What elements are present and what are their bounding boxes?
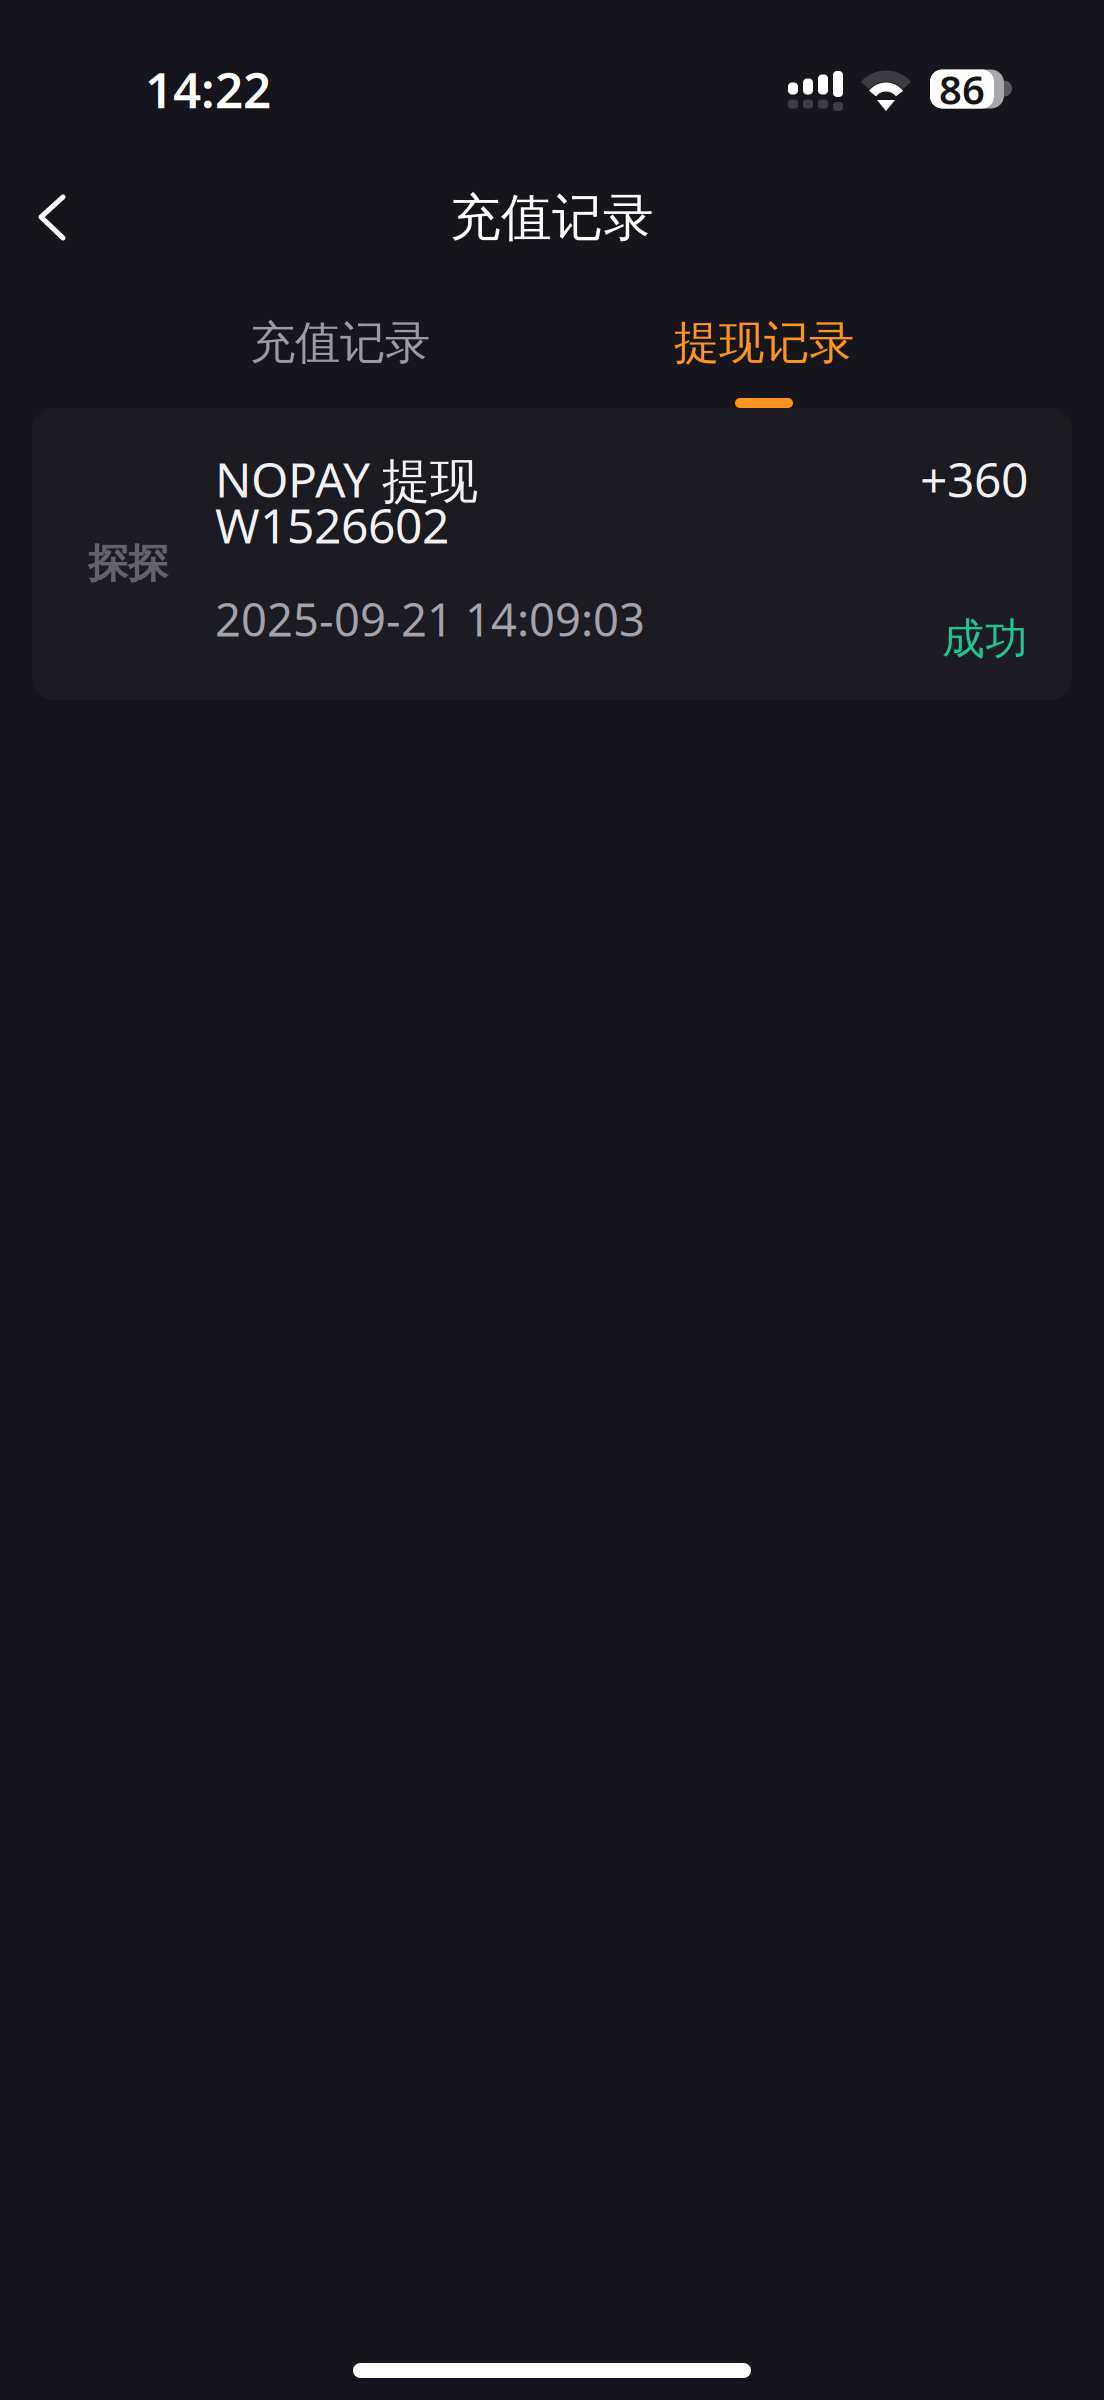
staticText: 探探 — [88, 539, 168, 588]
staticText: 86 — [939, 62, 985, 115]
staticText: 2025-09-21 14:09:03 — [215, 589, 645, 649]
staticText: 提现记录 — [674, 315, 854, 371]
staticText: NOPAY 提现 — [215, 447, 478, 511]
staticText: +360 — [920, 447, 1028, 511]
staticText: 充值记录 — [250, 315, 430, 371]
staticText: 成功 — [942, 613, 1028, 665]
staticText: 充值记录 — [450, 187, 654, 249]
button[interactable]: Back — [0, 177, 90, 259]
button[interactable]: 探探 — [0, 408, 1104, 700]
staticText: 14:22 — [145, 56, 271, 122]
button[interactable]: 提现记录 — [552, 318, 976, 408]
staticText: W1526602 — [215, 493, 449, 557]
button[interactable]: 充值记录 — [128, 318, 552, 408]
